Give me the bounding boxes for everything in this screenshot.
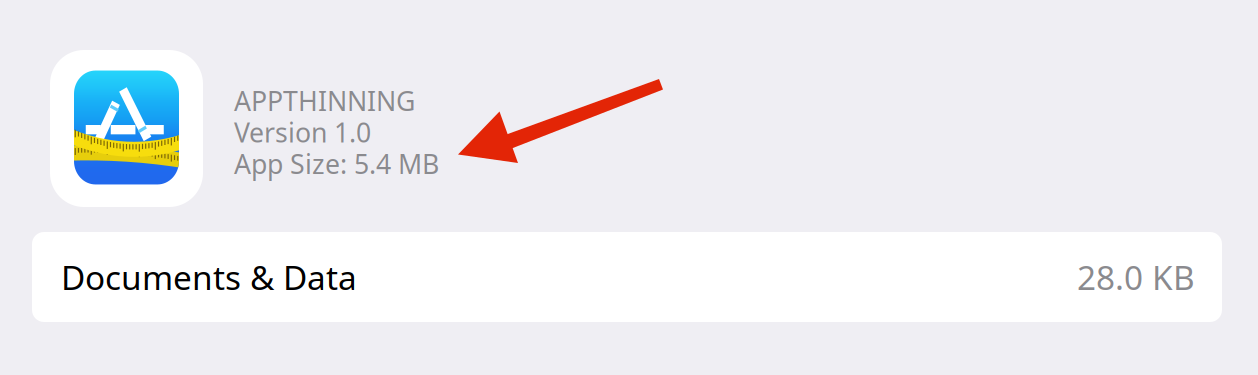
button[interactable]: Documents & Data [32,232,1222,322]
staticText: 28.0 KB [1077,255,1195,299]
staticText: Version 1.0 [234,114,371,150]
staticText: App Size: 5.4 MB [234,146,439,181]
staticText: APPTHINNING [234,83,415,118]
staticText: Documents & Data [61,255,357,299]
